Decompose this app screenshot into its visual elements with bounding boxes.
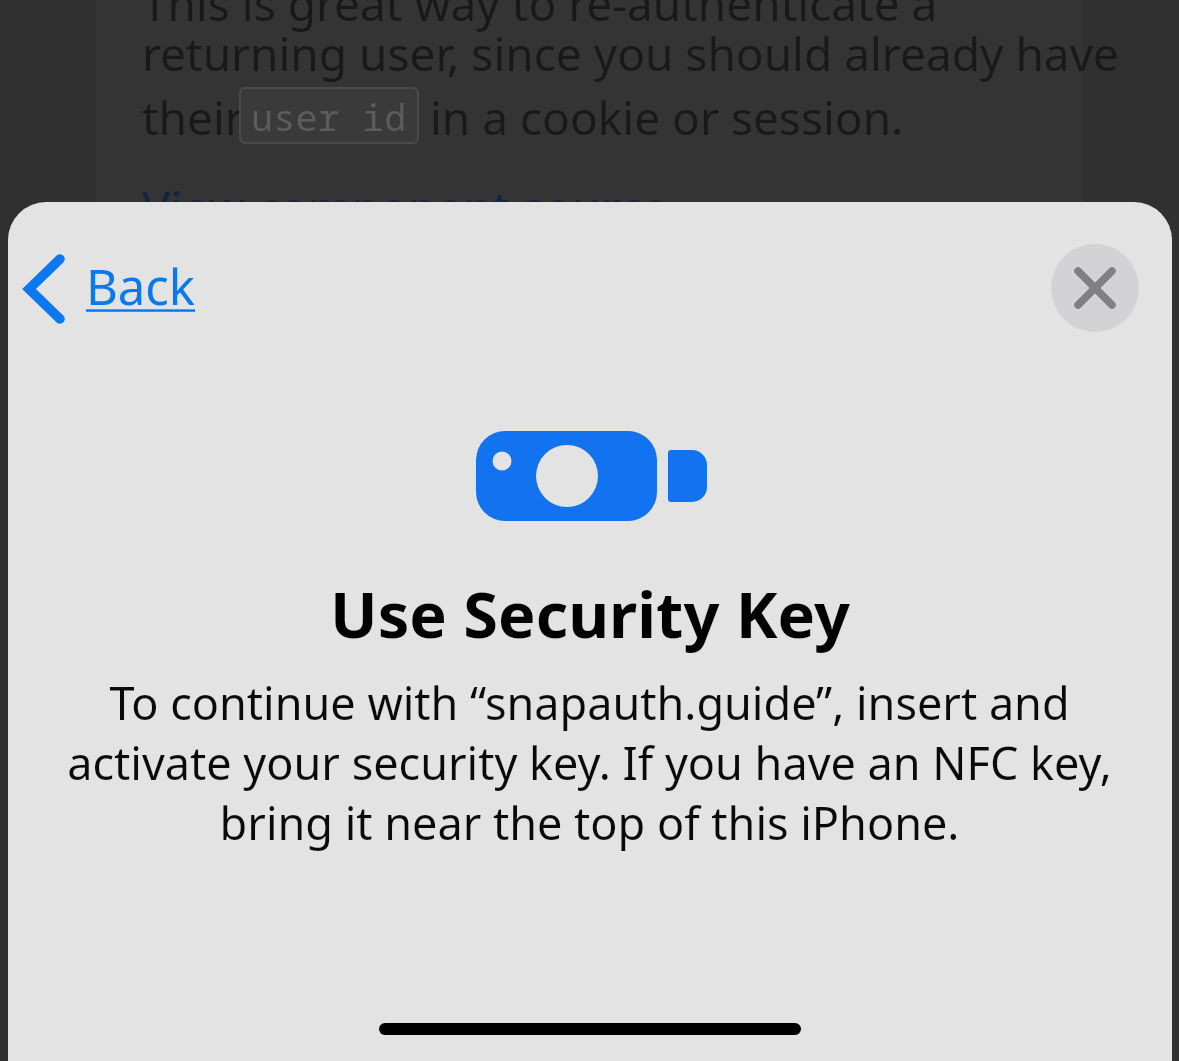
staticText: To continue with “snapauth.guide”, inser…: [62, 672, 1117, 853]
staticText: user id: [251, 91, 407, 141]
staticText: returning user, since you should already…: [142, 22, 1119, 85]
staticText: This is great way to re-authenticate a: [142, 0, 938, 35]
button[interactable]: Back: [12, 242, 226, 336]
button[interactable]: Close: [1051, 244, 1139, 332]
staticText: their: [142, 86, 244, 149]
staticText: in a cookie or session.: [430, 86, 904, 149]
staticText: Use Security Key: [330, 571, 850, 657]
staticText: View component source: [142, 176, 669, 239]
staticText: Back: [86, 253, 196, 320]
